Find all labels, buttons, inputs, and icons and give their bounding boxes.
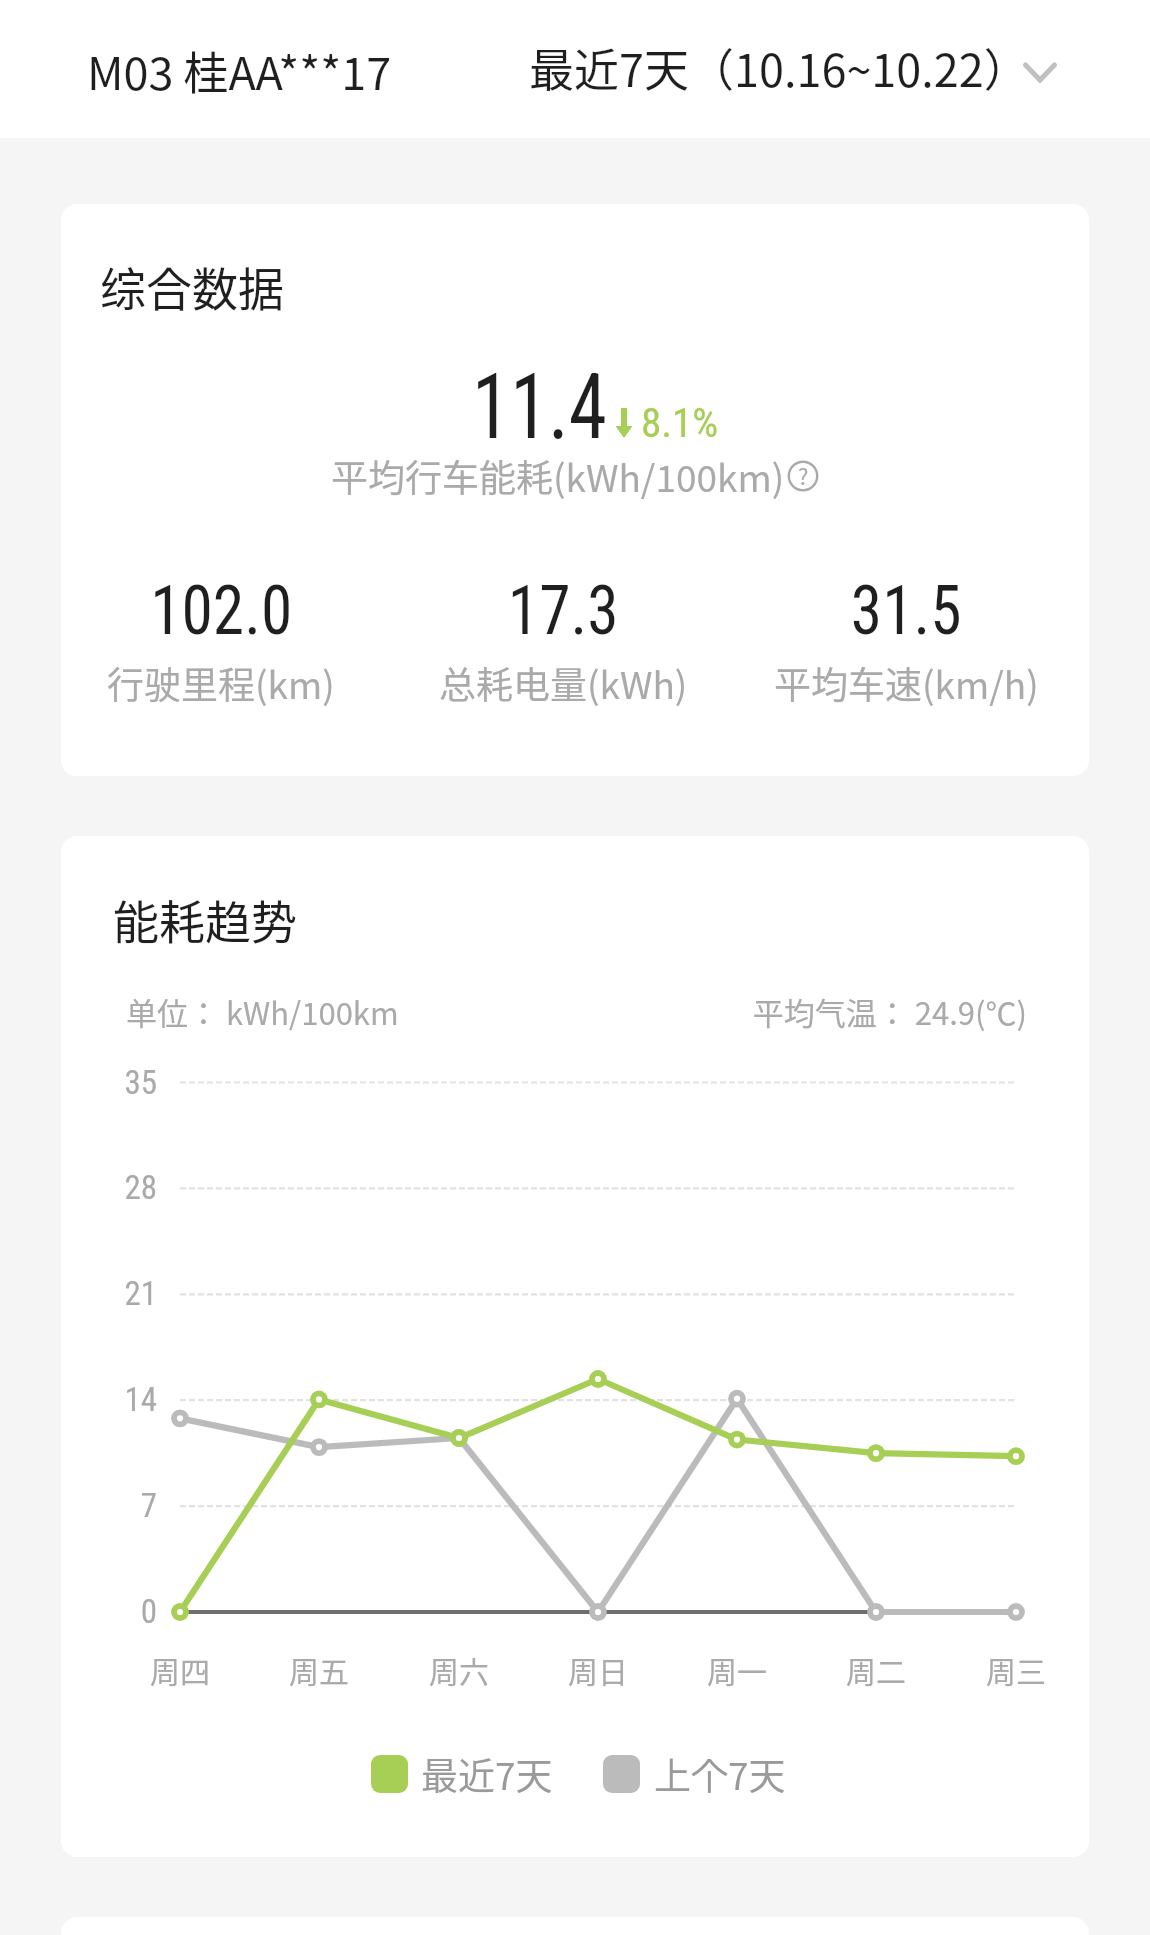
button[interactable]: 能耗趋势 bbox=[61, 836, 1089, 1857]
staticText: 平均气温： 24.9(℃) bbox=[725, 989, 1027, 1034]
staticText: 11.4 bbox=[472, 354, 607, 461]
button[interactable]: 31.5 bbox=[735, 570, 1078, 710]
staticText: 周六 bbox=[389, 1648, 529, 1691]
staticText: 最近7天（10.16~10.22） bbox=[529, 35, 1029, 100]
button[interactable]: 102.0 bbox=[61, 570, 392, 710]
button[interactable]: 17.3 bbox=[392, 570, 735, 710]
staticText: ? bbox=[798, 459, 809, 491]
staticText: 周五 bbox=[249, 1648, 389, 1691]
staticText: 0 bbox=[77, 1592, 157, 1631]
staticText: M03 桂AA***17 bbox=[87, 38, 392, 103]
staticText: 平均车速(km/h) bbox=[774, 656, 1039, 710]
staticText: 平均行车能耗(kWh/100km) bbox=[331, 449, 785, 503]
button[interactable]: 最近7天 bbox=[371, 1747, 553, 1801]
staticText: 31.5 bbox=[851, 570, 962, 651]
staticText: 28 bbox=[77, 1168, 157, 1207]
staticText: 能耗趋势 bbox=[113, 886, 297, 953]
button[interactable]: M03 桂AA***17 bbox=[60, 0, 420, 138]
staticText: 102.0 bbox=[150, 570, 293, 651]
staticText: 总耗电量(kWh) bbox=[439, 656, 688, 710]
staticText: 综合数据 bbox=[100, 253, 284, 320]
other: 展开日期选择 bbox=[1017, 44, 1063, 102]
staticText: 单位： kWh/100km bbox=[126, 989, 399, 1034]
staticText: 7 bbox=[77, 1486, 157, 1525]
staticText: 周一 bbox=[667, 1648, 807, 1691]
staticText: 8.1% bbox=[641, 399, 719, 447]
staticText: 14 bbox=[77, 1380, 157, 1419]
button[interactable]: 能耗说明 bbox=[786, 459, 820, 493]
staticText: 21 bbox=[77, 1274, 157, 1313]
staticText: 周三 bbox=[946, 1648, 1086, 1691]
button[interactable]: 最近7天（10.16~10.22） bbox=[529, 35, 1075, 100]
staticText: 行驶里程(km) bbox=[107, 656, 335, 710]
staticText: 17.3 bbox=[508, 570, 619, 651]
button[interactable]: 上个7天 bbox=[603, 1747, 786, 1801]
staticText: 周四 bbox=[110, 1648, 250, 1691]
staticText: 35 bbox=[77, 1063, 157, 1102]
staticText: 最近7天 bbox=[421, 1747, 553, 1801]
staticText: 上个7天 bbox=[654, 1747, 786, 1801]
button[interactable]: 综合数据 bbox=[61, 204, 1089, 776]
staticText: 周日 bbox=[528, 1648, 668, 1691]
staticText: 周二 bbox=[806, 1648, 946, 1691]
